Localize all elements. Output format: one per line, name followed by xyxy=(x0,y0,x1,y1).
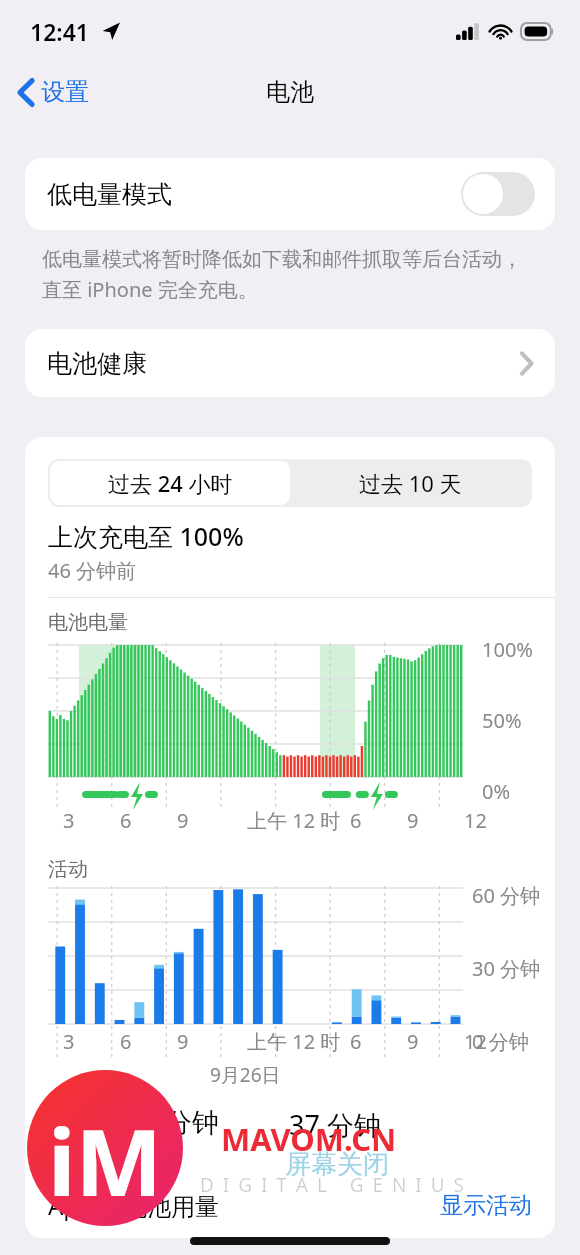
staticText: MAVOM.CN xyxy=(221,1118,397,1160)
staticText: 50% xyxy=(482,707,522,734)
staticText: 上午 12 时 xyxy=(247,807,341,834)
button[interactable]: 显示活动 xyxy=(440,1191,532,1220)
staticText: 9 xyxy=(177,807,189,834)
staticText: 46 分钟前 xyxy=(48,557,137,584)
staticText: 12 xyxy=(464,807,487,834)
staticText: 3 xyxy=(63,1028,75,1055)
staticText: 100% xyxy=(482,636,533,663)
staticText: 屏幕关闭 xyxy=(285,1148,389,1181)
staticText: 9 xyxy=(407,1028,419,1055)
staticText: 电池健康 xyxy=(47,348,147,379)
staticText: 9 xyxy=(407,807,419,834)
staticText: 12:41 xyxy=(30,16,89,47)
staticText: 6 xyxy=(120,1028,132,1055)
staticText: 分钟 xyxy=(165,1106,219,1140)
staticText: 电池电量 xyxy=(48,610,128,635)
staticText: 显示活动 xyxy=(440,1191,532,1220)
staticText: 60 分钟 xyxy=(472,882,541,909)
staticText: 6 xyxy=(120,807,132,834)
staticText: 6 xyxy=(350,807,362,834)
staticText: 0 分钟 xyxy=(472,1028,529,1055)
button[interactable]: 电池健康 xyxy=(25,329,555,397)
staticText: 6 xyxy=(350,1028,362,1055)
button[interactable]: 设置 xyxy=(12,71,95,113)
staticText: 设置 xyxy=(41,77,89,107)
staticText: 9月26日 xyxy=(210,1062,281,1088)
staticText: 30 分钟 xyxy=(472,955,541,982)
staticText: 低电量模式将暂时降低如下载和邮件抓取等后台活动， 直至 iPhone 完全充电。 xyxy=(42,247,522,303)
staticText: 活动 xyxy=(48,857,88,882)
staticText: App 的电池用量 xyxy=(48,1189,220,1222)
staticText: 过去 24 小时 xyxy=(108,468,233,498)
button[interactable]: 过去 10 天 xyxy=(290,461,530,505)
staticText: iM xyxy=(48,1098,163,1223)
staticText: D I G I T A L G E N I U S xyxy=(200,1172,467,1198)
staticText: 过去 10 天 xyxy=(359,468,462,498)
button[interactable]: 低电量模式开关 xyxy=(461,172,535,216)
staticText: 3 xyxy=(63,807,75,834)
staticText: 9 xyxy=(177,1028,189,1055)
staticText: 电池 xyxy=(266,77,314,107)
staticText: 12 xyxy=(464,1028,487,1055)
staticText: 上次充电至 100% xyxy=(48,519,244,553)
button[interactable]: 低电量模式 xyxy=(25,158,555,230)
button[interactable]: 过去 24 小时 xyxy=(50,461,290,505)
staticText: 上午 12 时 xyxy=(247,1028,341,1055)
staticText: 低电量模式 xyxy=(47,179,172,210)
staticText: 37 分钟 xyxy=(289,1106,381,1143)
staticText: 0% xyxy=(482,778,511,805)
